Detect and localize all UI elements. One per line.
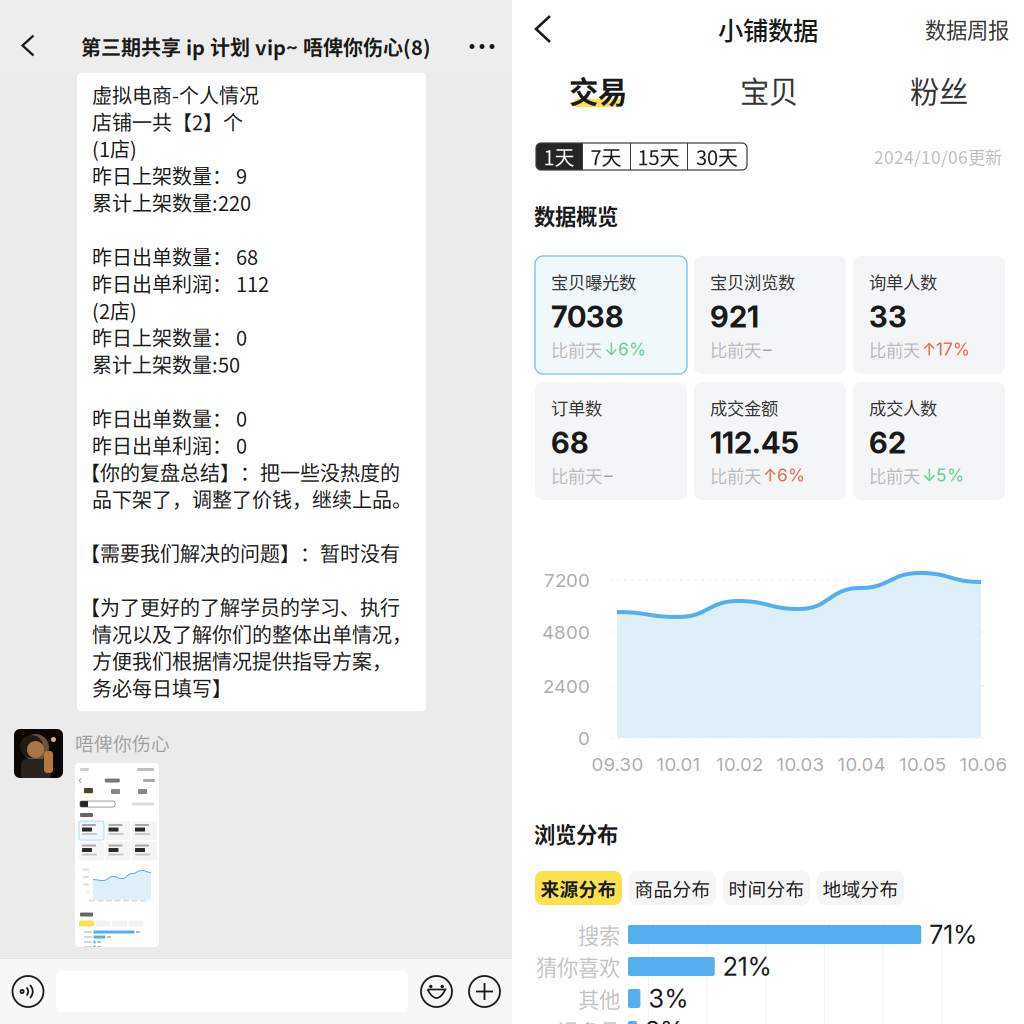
- staticText: 7200: [544, 569, 590, 592]
- staticText: 4800: [542, 621, 590, 644]
- button[interactable]: 订单数: [535, 382, 687, 500]
- staticText: 10.03: [776, 753, 824, 776]
- staticText: 7天: [590, 142, 621, 171]
- staticText: 比前天: [551, 337, 602, 362]
- staticText: 比前天: [869, 463, 920, 488]
- button[interactable]: 成交人数: [853, 382, 1005, 500]
- staticText: 10.02: [716, 753, 763, 776]
- staticText: 2400: [543, 675, 590, 698]
- button[interactable]: 15天: [630, 143, 687, 170]
- staticText: 数据概览: [534, 200, 618, 231]
- staticText: 宝贝曝光数: [551, 269, 636, 294]
- staticText: 累计上架数量:220: [92, 188, 251, 217]
- staticText: 浏览分布: [534, 818, 618, 849]
- staticText: ↓6%: [604, 339, 646, 360]
- staticText: 10.04: [837, 753, 885, 776]
- staticText: 交易: [569, 69, 627, 111]
- staticText: 2%: [645, 1015, 684, 1024]
- staticText: (2店): [92, 296, 137, 325]
- staticText: 宝贝浏览数: [710, 269, 795, 294]
- staticText: 数据周报: [925, 14, 1009, 44]
- button[interactable]: More options: [460, 959, 509, 1024]
- staticText: 务必每日填写】: [92, 673, 232, 702]
- staticText: 昨日出单利润： 0: [92, 430, 247, 459]
- staticText: 品下架了，调整了价钱，继续上品。: [92, 484, 412, 513]
- staticText: 成交金额: [710, 395, 778, 420]
- staticText: 09.30: [591, 753, 643, 776]
- button[interactable]: 宝贝: [740, 62, 798, 118]
- staticText: 昨日上架数量： 0: [92, 323, 247, 352]
- button[interactable]: Back: [512, 0, 574, 58]
- staticText: 7038: [551, 299, 624, 335]
- button[interactable]: More: [452, 0, 512, 72]
- staticText: 比前天: [710, 337, 761, 362]
- staticText: 【你的复盘总结】：把一些没热度的: [80, 457, 400, 486]
- staticText: 68: [551, 425, 589, 461]
- staticText: 71%: [929, 919, 977, 950]
- staticText: 地域分布: [822, 874, 898, 901]
- staticText: 店铺一共【2】个: [92, 107, 243, 136]
- staticText: 询单人数: [869, 269, 937, 294]
- button[interactable]: 商品分布: [629, 871, 716, 905]
- button[interactable]: 宝贝曝光数: [535, 256, 687, 374]
- staticText: 21%: [723, 951, 772, 982]
- staticText: ↑6%: [763, 465, 805, 486]
- staticText: 62: [869, 425, 906, 461]
- staticText: 累计上架数量:50: [92, 350, 240, 379]
- button[interactable]: 地域分布: [817, 871, 904, 905]
- staticText: 猜你喜欢: [536, 951, 620, 982]
- staticText: 误多品: [557, 1015, 620, 1024]
- button[interactable]: 7天: [582, 143, 630, 170]
- staticText: 成交人数: [869, 395, 937, 420]
- staticText: 第三期共享 ip 计划 vip~ 唔俾你伤心(8): [81, 32, 431, 61]
- button[interactable]: 1天: [536, 143, 582, 170]
- staticText: 方便我们根据情况提供指导方案，: [92, 646, 392, 675]
- staticText: 15天: [637, 142, 679, 171]
- staticText: ↑17%: [922, 339, 970, 360]
- staticText: 虚拟电商-个人情况: [92, 80, 259, 109]
- staticText: 昨日出单数量： 68: [92, 242, 258, 271]
- staticText: 比前天: [710, 463, 761, 488]
- button[interactable]: 30天: [687, 143, 747, 170]
- button[interactable]: 交易: [569, 62, 627, 118]
- button[interactable]: 成交金额: [694, 382, 846, 500]
- staticText: 2024/10/06更新: [874, 144, 1002, 169]
- staticText: 30天: [696, 142, 738, 171]
- button[interactable]: 询单人数: [853, 256, 1005, 374]
- staticText: –: [604, 465, 613, 486]
- staticText: 情况以及了解你们的整体出单情况，: [92, 619, 412, 648]
- staticText: (1店): [92, 134, 137, 163]
- staticText: 比前天: [869, 337, 920, 362]
- staticText: 33: [869, 299, 907, 335]
- staticText: 粉丝: [910, 69, 968, 111]
- staticText: 921: [710, 299, 759, 335]
- button[interactable]: 时间分布: [723, 871, 810, 905]
- staticText: 【为了更好的了解学员的学习、执行: [80, 592, 400, 621]
- staticText: 10.05: [899, 753, 946, 776]
- button[interactable]: 数据周报: [925, 0, 1024, 58]
- button[interactable]: 来源分布: [535, 871, 622, 905]
- button[interactable]: Voice message: [0, 959, 56, 1024]
- button[interactable]: 粉丝: [910, 62, 968, 118]
- staticText: 10.06: [959, 753, 1007, 776]
- staticText: 商品分布: [634, 874, 710, 901]
- staticText: 小铺数据: [718, 11, 818, 47]
- staticText: 搜索: [578, 919, 620, 950]
- staticText: ↓5%: [922, 465, 964, 486]
- staticText: 昨日出单数量： 0: [92, 403, 247, 432]
- staticText: –: [763, 339, 772, 360]
- staticText: 昨日上架数量： 9: [92, 161, 247, 190]
- button[interactable]: Emoji: [413, 959, 460, 1024]
- staticText: 来源分布: [540, 874, 616, 901]
- staticText: 订单数: [551, 395, 602, 420]
- staticText: 112.45: [710, 425, 799, 461]
- staticText: 3%: [648, 983, 688, 1014]
- staticText: 比前天: [551, 463, 602, 488]
- button[interactable]: Back: [0, 0, 52, 72]
- button[interactable]: 宝贝浏览数: [694, 256, 846, 374]
- staticText: 昨日出单利润： 112: [92, 269, 269, 298]
- staticText: 1天: [543, 142, 574, 171]
